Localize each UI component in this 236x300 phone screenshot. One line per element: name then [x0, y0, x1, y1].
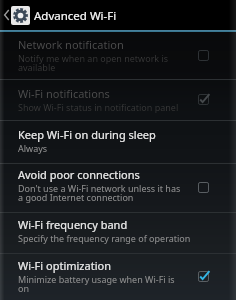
- staticText: Advanced Wi-Fi: [34, 8, 117, 24]
- button[interactable]: Network notification: [0, 32, 236, 79]
- staticText: Avoid poor connections: [18, 167, 140, 182]
- staticText: Always: [18, 142, 48, 154]
- button[interactable]: Navigate up: [0, 0, 30, 30]
- button[interactable]: Unchecked: [192, 44, 214, 66]
- staticText: Show Wi-Fi status in notification panel: [18, 101, 179, 113]
- button[interactable]: Wi-Fi optimization: [0, 254, 236, 300]
- button[interactable]: Wi-Fi frequency band: [0, 213, 236, 253]
- button[interactable]: Avoid poor connections: [0, 164, 236, 212]
- staticText: Network notification: [18, 37, 124, 52]
- staticText: Wi-Fi notifications: [18, 86, 110, 101]
- staticText: Specify the frequency range of operation: [18, 232, 191, 244]
- staticText: Minimize battery usage when Wi-Fi is on: [18, 273, 184, 295]
- staticText: Don't use a Wi-Fi network unless it has …: [18, 182, 184, 204]
- staticText: Wi-Fi optimization: [18, 258, 111, 273]
- button[interactable]: Keep Wi-Fi on during sleep: [0, 121, 236, 163]
- staticText: Wi-Fi frequency band: [18, 217, 128, 232]
- staticText: Keep Wi-Fi on during sleep: [18, 127, 156, 142]
- button[interactable]: Unchecked: [192, 176, 214, 198]
- button[interactable]: Wi-Fi notifications: [0, 80, 236, 120]
- button[interactable]: Checked: [192, 265, 214, 287]
- button[interactable]: Checked: [192, 88, 214, 110]
- staticText: Notify me when an open network is availa…: [18, 52, 184, 74]
